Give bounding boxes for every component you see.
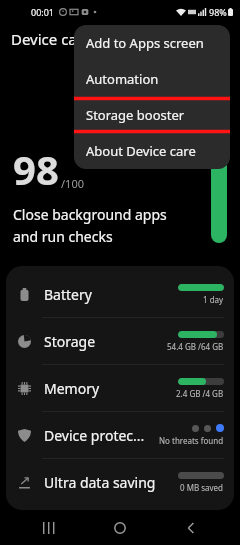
button[interactable]: Automation [74,61,230,97]
staticText: Device protec... [44,426,145,445]
staticText: 98 [13,142,59,196]
staticText: /100 [61,176,84,191]
staticText: Storage [44,332,96,351]
button[interactable]: Memory [6,365,234,411]
staticText: and run checks [13,227,113,246]
button[interactable]: Add to Apps screen [74,25,230,61]
staticText: 2.4 GB /4 GB [176,388,224,399]
staticText: Automation [86,70,159,88]
staticText: Device care [11,29,92,49]
staticText: No threats found [159,435,224,446]
staticText: 00:01 [31,6,55,18]
staticText: Memory [44,379,100,398]
staticText: Add to Apps screen [86,34,204,52]
staticText: Close background apps [13,205,167,224]
button[interactable]: Device protec... [6,412,234,458]
staticText: 1 day [203,294,224,305]
button[interactable]: Ultra data saving [6,459,234,505]
button[interactable]: Back [169,511,213,545]
staticText: 98% [209,6,227,18]
staticText: Storage booster [86,106,185,124]
button[interactable]: About Device care [74,133,230,169]
staticText: Battery [44,285,92,304]
staticText: Ultra data saving [44,473,156,492]
staticText: 54.4 GB /64 GB [167,341,224,352]
button[interactable]: Recents [27,511,71,545]
button[interactable]: Home [98,511,142,545]
button[interactable]: Storage booster [74,97,230,133]
button[interactable]: Storage [6,318,234,364]
button[interactable]: Battery [6,271,234,317]
staticText: About Device care [86,142,196,160]
staticText: 0 MB saved [180,482,224,493]
